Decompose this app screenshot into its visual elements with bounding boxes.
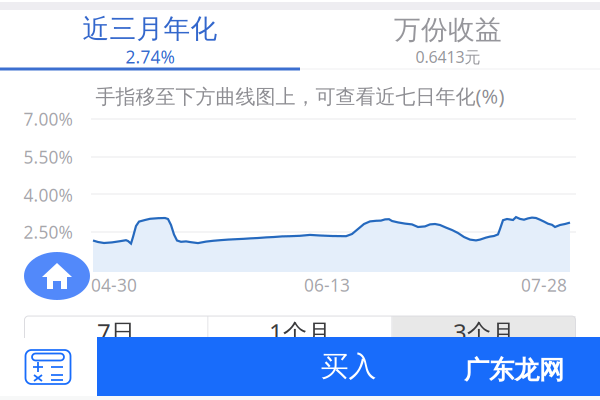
staticText: 5.50% [23,145,72,168]
button[interactable]: 3个月 [392,316,575,346]
staticText: 1个月 [269,316,331,346]
button[interactable]: 近三月年化 [0,9,300,71]
button[interactable]: Home [24,252,90,300]
button[interactable]: 万份收益 [298,9,598,71]
staticText: 万份收益 [394,13,502,46]
staticText: 07-28 [521,273,567,296]
staticText: 4.00% [23,183,72,206]
staticText: 广东龙网 [464,354,564,385]
staticText: 3个月 [453,316,515,346]
staticText: 7.00% [23,107,72,130]
staticText: 2.50% [23,220,72,243]
staticText: 近三月年化 [82,13,217,45]
staticText: 0.6413元 [415,46,480,67]
staticText: 手指移至下方曲线图上，可查看近七日年化(%) [95,83,504,109]
staticText: 买入 [320,349,376,384]
button[interactable]: 7日 [24,316,207,346]
staticText: 04-30 [91,273,137,296]
button[interactable]: 1个月 [208,316,391,346]
staticText: 2.74% [125,45,174,68]
button[interactable]: Calculator [23,347,73,387]
staticText: 06-13 [304,273,350,296]
button[interactable]: 买入 [97,337,600,396]
staticText: 7日 [97,316,135,346]
